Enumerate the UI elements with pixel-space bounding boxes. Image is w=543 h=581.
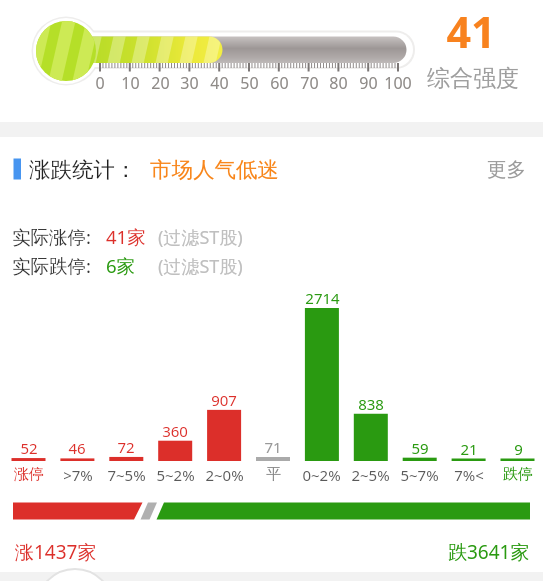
staticText: 21 (460, 439, 478, 459)
staticText: 实际跌停: (12, 253, 91, 278)
staticText: 30 (180, 72, 199, 94)
staticText: 100 (384, 72, 412, 94)
staticText: 2~5% (351, 465, 390, 485)
staticText: 7%< (454, 465, 484, 485)
staticText: 2~0% (205, 465, 244, 485)
staticText: 70 (300, 72, 319, 94)
staticText: 52 (20, 438, 38, 458)
staticText: 41家 (106, 224, 146, 249)
staticText: 90 (359, 72, 378, 94)
staticText: 80 (329, 72, 348, 94)
staticText: 2714 (305, 288, 340, 308)
staticText: 59 (411, 438, 429, 458)
staticText: 涨1437家 (15, 539, 97, 565)
staticText: 838 (358, 394, 384, 414)
staticText: 10 (121, 72, 140, 94)
staticText: 市场人气低迷 (150, 156, 279, 183)
staticText: 20 (151, 72, 170, 94)
staticText: 平 (266, 465, 281, 484)
staticText: 涨停 (14, 465, 44, 484)
staticText: 综合强度 (427, 64, 519, 93)
staticText: 9 (514, 439, 523, 459)
staticText: (过滤ST股) (158, 225, 243, 250)
staticText: 5~7% (400, 465, 439, 485)
staticText: 46 (68, 438, 86, 458)
staticText: 41 (446, 2, 496, 61)
staticText: 6家 (106, 253, 136, 278)
staticText: (过滤ST股) (158, 254, 243, 279)
staticText: 40 (210, 72, 229, 94)
staticText: 50 (240, 72, 259, 94)
staticText: >7% (63, 465, 93, 485)
staticText: 实际涨停: (12, 224, 91, 249)
staticText: 0 (95, 72, 105, 94)
staticText: 360 (162, 421, 188, 441)
staticText: 跌停 (503, 465, 533, 484)
staticText: 更多 (487, 157, 526, 182)
staticText: 60 (270, 72, 289, 94)
staticText: 7~5% (107, 465, 146, 485)
staticText: 71 (264, 437, 282, 457)
staticText: 涨跌统计： (29, 156, 137, 183)
staticText: 5~2% (156, 465, 195, 485)
staticText: 907 (211, 390, 237, 410)
staticText: 72 (117, 437, 135, 457)
staticText: 跌3641家 (448, 539, 530, 565)
staticText: 0~2% (302, 465, 341, 485)
